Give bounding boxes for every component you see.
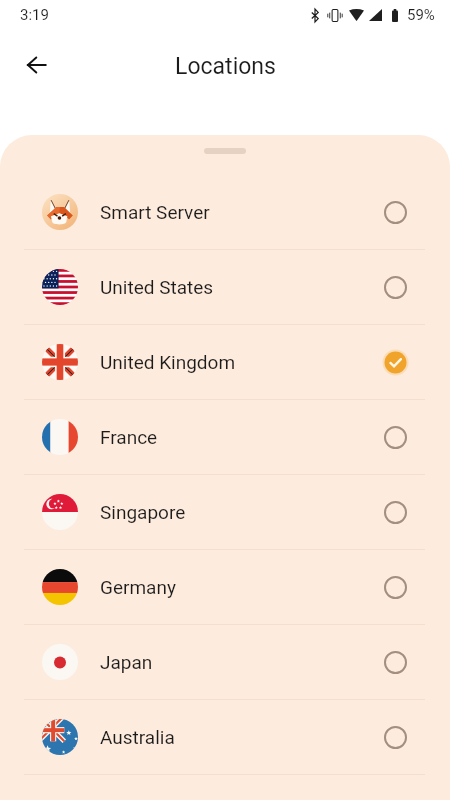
staticText: United States bbox=[100, 276, 214, 298]
staticText: Australia bbox=[100, 726, 175, 748]
button[interactable]: Back bbox=[12, 42, 60, 90]
button[interactable]: Singapore bbox=[0, 475, 450, 549]
staticText: Smart Server bbox=[100, 201, 210, 223]
button[interactable]: France bbox=[0, 400, 450, 474]
staticText: Japan bbox=[100, 651, 153, 673]
staticText: France bbox=[100, 426, 158, 448]
staticText: 59% bbox=[407, 6, 435, 24]
button[interactable]: United Kingdom bbox=[0, 325, 450, 399]
button[interactable]: United States bbox=[0, 250, 450, 324]
button[interactable]: Smart Server bbox=[0, 175, 450, 249]
staticText: United Kingdom bbox=[100, 351, 236, 373]
staticText: Locations bbox=[175, 53, 276, 80]
button[interactable]: Germany bbox=[0, 550, 450, 624]
staticText: 3:19 bbox=[20, 6, 49, 24]
button[interactable]: Japan bbox=[0, 625, 450, 699]
button[interactable]: Australia bbox=[0, 700, 450, 774]
staticText: Germany bbox=[100, 576, 176, 598]
staticText: Singapore bbox=[100, 501, 186, 523]
